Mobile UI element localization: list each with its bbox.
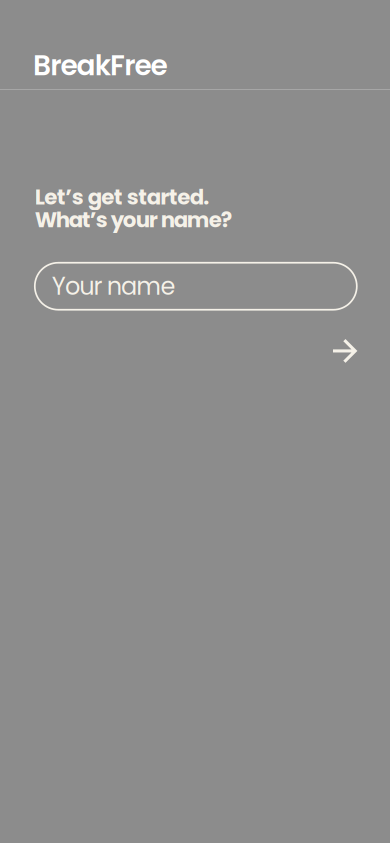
button[interactable]: Your name xyxy=(35,263,357,310)
staticText: What’s your name? xyxy=(35,205,232,235)
staticText: Your name xyxy=(52,269,175,303)
staticText: BreakFree xyxy=(33,46,168,85)
button[interactable]: Continue xyxy=(331,339,357,363)
staticText: Let’s get started. xyxy=(35,182,209,212)
